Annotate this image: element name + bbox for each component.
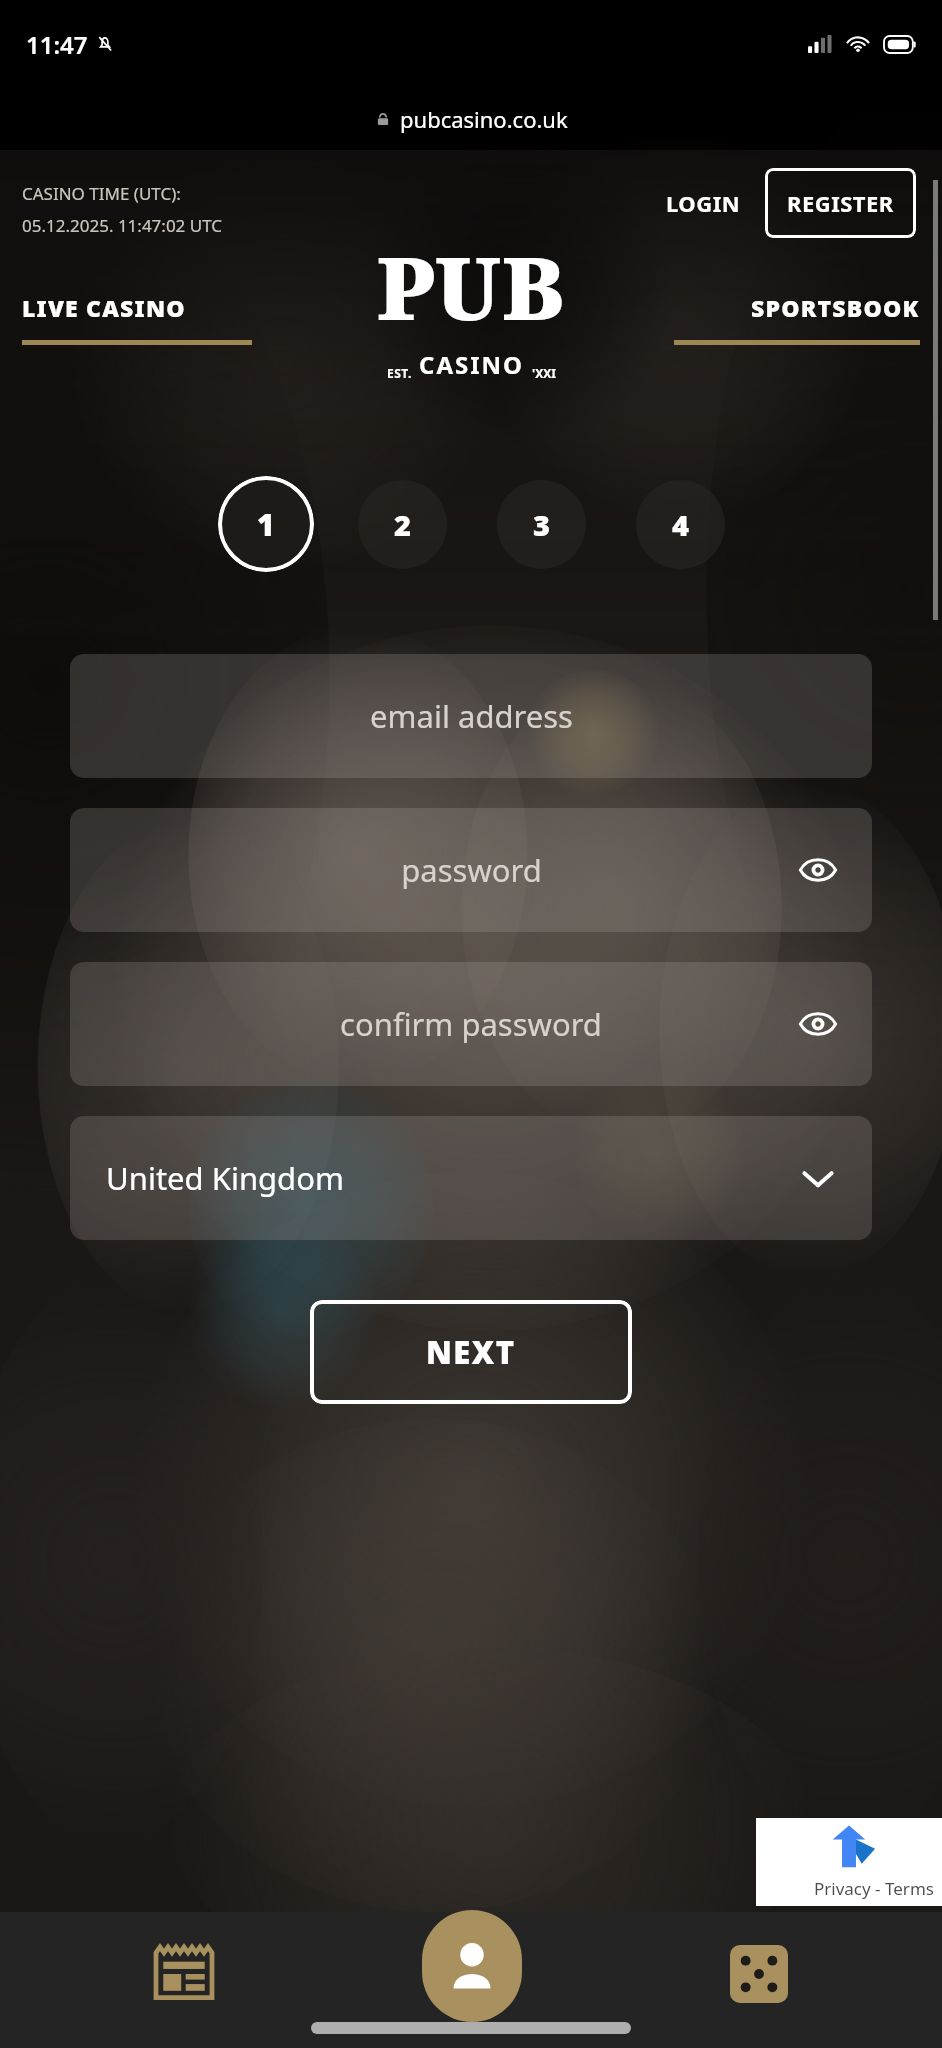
staticText: pubcasino.co.uk [400,104,568,134]
staticText: United Kingdom [106,1157,344,1199]
button[interactable]: 3 [497,480,586,569]
staticText: 2 [394,505,411,544]
button[interactable]: 2 [358,480,447,569]
staticText: PUB [377,228,566,345]
staticText: CASINO [419,348,525,381]
staticText: LOGIN [666,188,741,218]
staticText: SPORTSBOOK [751,292,920,323]
staticText: NEXT [426,1331,516,1373]
staticText: email address [370,695,573,737]
button[interactable]: Bets [40,1912,328,2048]
staticText: 'XXI [532,365,556,381]
button[interactable]: password [70,808,872,932]
button[interactable]: 4 [636,480,725,569]
button[interactable]: NEXT [310,1300,632,1404]
staticText: 3 [533,505,550,544]
staticText: CASINO TIME (UTC): [22,182,181,205]
button[interactable]: Select country [792,1152,844,1204]
staticText: confirm password [340,1003,602,1045]
staticText: EST. [387,365,412,381]
staticText: password [401,849,542,891]
staticText: 11:47 [26,28,88,61]
staticText: REGISTER [787,188,894,218]
staticText: 4 [672,505,689,544]
button[interactable]: SPORTSBOOK [674,292,920,345]
staticText: LIVE CASINO [22,292,186,323]
button[interactable]: REGISTER [765,168,916,238]
staticText: 1 [257,504,275,545]
button[interactable]: confirm password [70,962,872,1086]
button[interactable]: Account [328,1912,615,2048]
button[interactable]: LIVE CASINO [22,292,252,345]
button[interactable]: email address [70,654,872,778]
button[interactable]: LOGIN [656,178,751,228]
button[interactable]: United Kingdom [70,1116,872,1240]
button[interactable]: Show password [792,998,844,1050]
staticText: 05.12.2025. 11:47:02 UTC [22,214,223,237]
button[interactable]: pubcasino.co.uk [0,88,942,150]
button[interactable]: 1 [218,476,314,572]
button[interactable]: Games [615,1912,902,2048]
button[interactable]: Show password [792,844,844,896]
staticText: Privacy - Terms [814,1877,934,1900]
